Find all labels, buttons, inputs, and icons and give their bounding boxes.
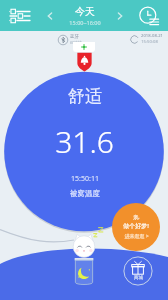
button[interactable]: 设置 [0, 0, 40, 31]
button[interactable]: 下一天 [110, 0, 130, 31]
staticText: 今天 [75, 5, 95, 18]
button[interactable]: 睡眠小猫 [66, 232, 102, 288]
staticText: 被窝温度 [70, 189, 100, 198]
staticText: 做个好梦! [123, 222, 149, 230]
staticText: 进来逛逛 > [124, 233, 149, 240]
staticText: 15:50:08 [141, 39, 158, 45]
button[interactable]: 2018-08-21 [130, 33, 163, 45]
staticText: 商城 [134, 275, 143, 281]
staticText: 15:00~16:00 [69, 19, 101, 26]
button[interactable]: 上一天 [40, 0, 60, 31]
button[interactable]: 历史记录 [130, 0, 168, 31]
staticText: 舒适 [68, 86, 102, 107]
staticText: 蓝牙 [70, 34, 79, 40]
staticText: 亲, [133, 214, 140, 221]
button[interactable]: 闹钟提醒 [76, 52, 93, 72]
button[interactable]: 亲, [112, 203, 160, 251]
staticText: 已连接 [70, 40, 82, 45]
staticText: 15:50:11 [71, 174, 99, 184]
button[interactable]: 蓝牙 [58, 34, 82, 45]
button[interactable]: 今天 [60, 0, 110, 31]
staticText: 31.6 [55, 121, 114, 162]
button[interactable]: 商城 [123, 256, 153, 286]
staticText: 2018-08-21 [141, 33, 163, 39]
